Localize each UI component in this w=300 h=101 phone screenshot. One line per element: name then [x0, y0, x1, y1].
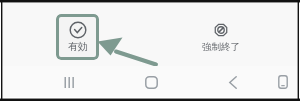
button[interactable]: Rotate screen [271, 70, 295, 94]
staticText: 強制終了 [202, 41, 240, 53]
button[interactable]: 有効 [56, 14, 99, 60]
staticText: 有効 [68, 40, 88, 53]
button[interactable]: Back [221, 70, 245, 94]
button[interactable]: Home [139, 70, 163, 94]
button[interactable]: Recents [56, 70, 80, 94]
button[interactable]: 強制終了 [198, 23, 244, 53]
